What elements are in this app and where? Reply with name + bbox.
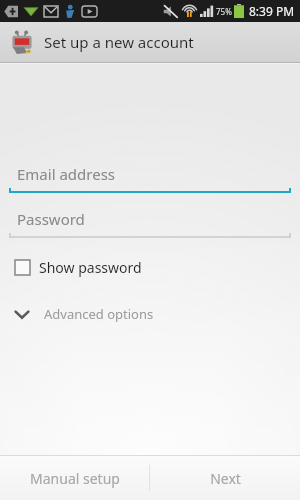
button[interactable]: Manual setup (0, 456, 149, 500)
staticText: Password (17, 209, 85, 229)
other: Expand advanced options (12, 304, 32, 324)
button[interactable]: Next (150, 456, 300, 500)
staticText: Email address (17, 164, 116, 184)
button[interactable]: Expand advanced options (0, 298, 300, 330)
staticText: Show password (39, 258, 142, 277)
staticText: Set up a new account (44, 32, 194, 52)
staticText: 8:39 PM (249, 3, 295, 19)
staticText: 75% (216, 6, 232, 17)
button[interactable]: Password (9, 209, 291, 240)
staticText: Advanced options (44, 305, 154, 323)
button[interactable]: Email address (9, 164, 291, 195)
staticText: Manual setup (30, 469, 120, 488)
button[interactable]: Show password (0, 252, 300, 282)
staticText: Next (210, 469, 241, 488)
